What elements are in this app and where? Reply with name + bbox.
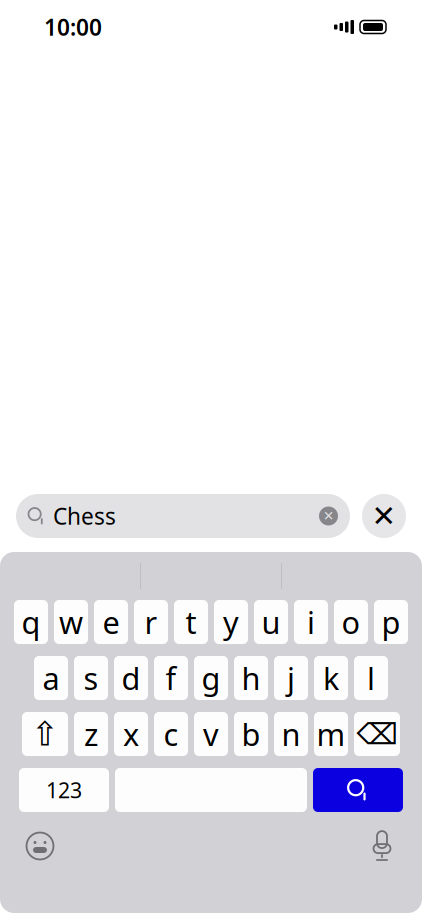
button[interactable]: u (254, 600, 288, 644)
button[interactable]: Chess (16, 494, 350, 538)
staticText: l (367, 658, 375, 698)
button[interactable]: Emoji (18, 824, 62, 868)
button[interactable]: h (234, 656, 268, 700)
staticText: ✕ (323, 508, 334, 523)
button[interactable]: t (174, 600, 208, 644)
staticText: w (59, 602, 83, 642)
staticText: ✕ (371, 499, 396, 533)
button[interactable]: f (154, 656, 188, 700)
button[interactable]: Search (313, 768, 403, 812)
button[interactable]: a (34, 656, 68, 700)
button[interactable]: Shift (22, 712, 68, 756)
button[interactable]: s (74, 656, 108, 700)
staticText: b (241, 714, 260, 754)
button[interactable]: d (114, 656, 148, 700)
staticText: n (281, 714, 300, 754)
staticText: x (123, 714, 139, 754)
staticText: i (307, 602, 315, 642)
button[interactable]: 123 (19, 768, 109, 812)
staticText: t (185, 602, 196, 642)
staticText: z (84, 714, 98, 754)
button[interactable]: b (234, 712, 268, 756)
staticText: o (341, 602, 360, 642)
staticText: y (223, 602, 239, 642)
staticText: r (144, 602, 157, 642)
staticText: ⇧ (31, 715, 59, 753)
button[interactable]: z (74, 712, 108, 756)
button[interactable]: x (114, 712, 148, 756)
button[interactable]: j (274, 656, 308, 700)
staticText: p (381, 602, 400, 642)
button[interactable]: g (194, 656, 228, 700)
staticText: j (287, 658, 295, 698)
staticText: s (83, 658, 98, 698)
staticText: Chess (53, 501, 116, 531)
button[interactable]: v (194, 712, 228, 756)
staticText: m (316, 714, 345, 754)
button[interactable]: q (14, 600, 48, 644)
staticText: k (323, 658, 339, 698)
staticText: h (241, 658, 260, 698)
staticText: c (163, 714, 178, 754)
button[interactable]: y (214, 600, 248, 644)
button[interactable]: i (294, 600, 328, 644)
button[interactable]: o (334, 600, 368, 644)
staticText: u (261, 602, 280, 642)
button[interactable]: p (374, 600, 408, 644)
button[interactable]: c (154, 712, 188, 756)
button[interactable]: Close search (362, 494, 406, 538)
staticText: v (203, 714, 219, 754)
staticText: a (42, 658, 59, 698)
staticText: f (165, 658, 176, 698)
button[interactable]: Dictation (360, 824, 404, 868)
button[interactable]: e (94, 600, 128, 644)
staticText: 10:00 (44, 12, 102, 42)
button[interactable]: n (274, 712, 308, 756)
button[interactable]: k (314, 656, 348, 700)
staticText: g (201, 658, 220, 698)
button[interactable]: m (314, 712, 348, 756)
button[interactable]: r (134, 600, 168, 644)
button[interactable]: w (54, 600, 88, 644)
staticText: q (21, 602, 40, 642)
staticText: ⌫ (356, 717, 397, 751)
staticText: e (102, 602, 119, 642)
button[interactable]: Delete (354, 712, 400, 756)
staticText: 123 (46, 776, 82, 804)
staticText: d (121, 658, 140, 698)
button[interactable]: l (354, 656, 388, 700)
